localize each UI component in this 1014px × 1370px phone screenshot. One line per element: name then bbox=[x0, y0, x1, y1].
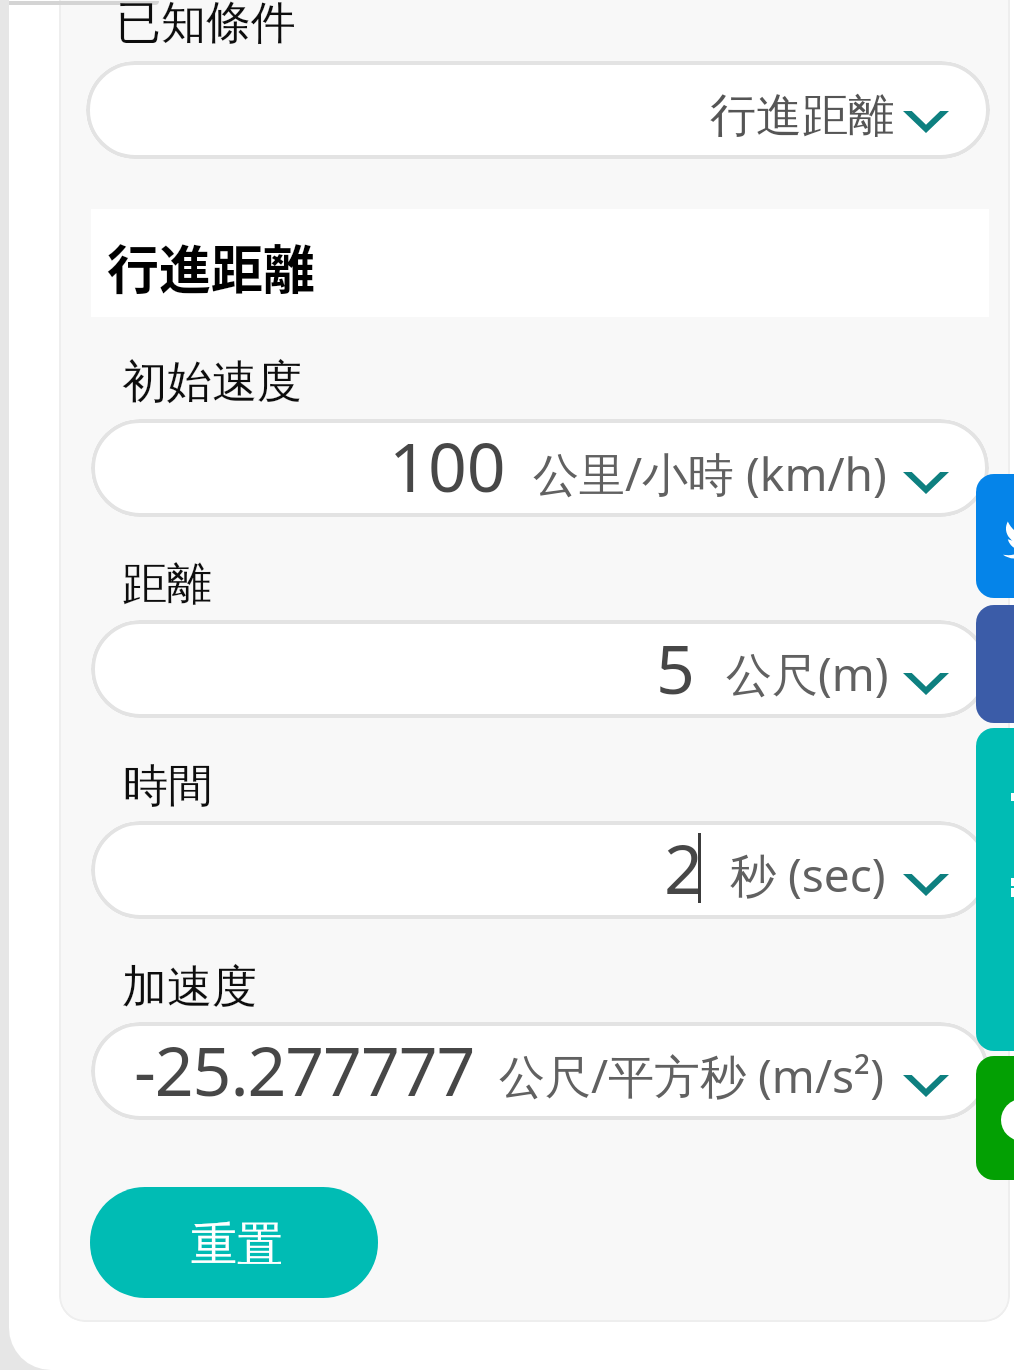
staticText: 已知條件 bbox=[116, 0, 296, 52]
staticText: 公尺(m) bbox=[726, 642, 889, 705]
staticText: 重置 bbox=[191, 1216, 283, 1274]
button[interactable]: Share on Facebook bbox=[976, 605, 1014, 723]
button[interactable]: Change time unit bbox=[903, 874, 949, 896]
button[interactable] bbox=[91, 620, 989, 718]
button[interactable]: Share bbox=[976, 728, 1014, 1051]
button[interactable]: 重置 bbox=[90, 1187, 378, 1298]
button[interactable]: Change speed unit bbox=[903, 472, 949, 494]
button[interactable]: Change distance unit bbox=[903, 673, 949, 695]
staticText: 初始速度 bbox=[122, 354, 302, 411]
staticText: 2 bbox=[664, 821, 703, 914]
staticText: 加速度 bbox=[122, 959, 257, 1016]
button[interactable] bbox=[91, 821, 989, 919]
staticText: -25.277777 bbox=[134, 1023, 475, 1116]
staticText: 100 bbox=[389, 419, 506, 512]
staticText: 秒 (sec) bbox=[730, 843, 886, 906]
staticText: 時間 bbox=[123, 758, 213, 815]
button[interactable] bbox=[91, 1022, 989, 1120]
staticText: 公尺/平方秒 (m/s²) bbox=[499, 1044, 884, 1107]
staticText: 5 bbox=[656, 621, 695, 714]
button[interactable]: Share on WhatsApp bbox=[976, 1056, 1014, 1180]
button[interactable] bbox=[91, 419, 989, 517]
staticText: 行進距離 bbox=[710, 87, 894, 145]
button[interactable] bbox=[86, 61, 990, 159]
staticText: 距離 bbox=[122, 556, 212, 613]
button[interactable]: Share on Twitter bbox=[976, 474, 1014, 598]
staticText: 行進距離 bbox=[107, 229, 316, 304]
button[interactable]: Expand condition bbox=[903, 111, 949, 133]
staticText: 公里/小時 (km/h) bbox=[533, 442, 887, 505]
button[interactable]: Change acceleration unit bbox=[903, 1075, 949, 1097]
